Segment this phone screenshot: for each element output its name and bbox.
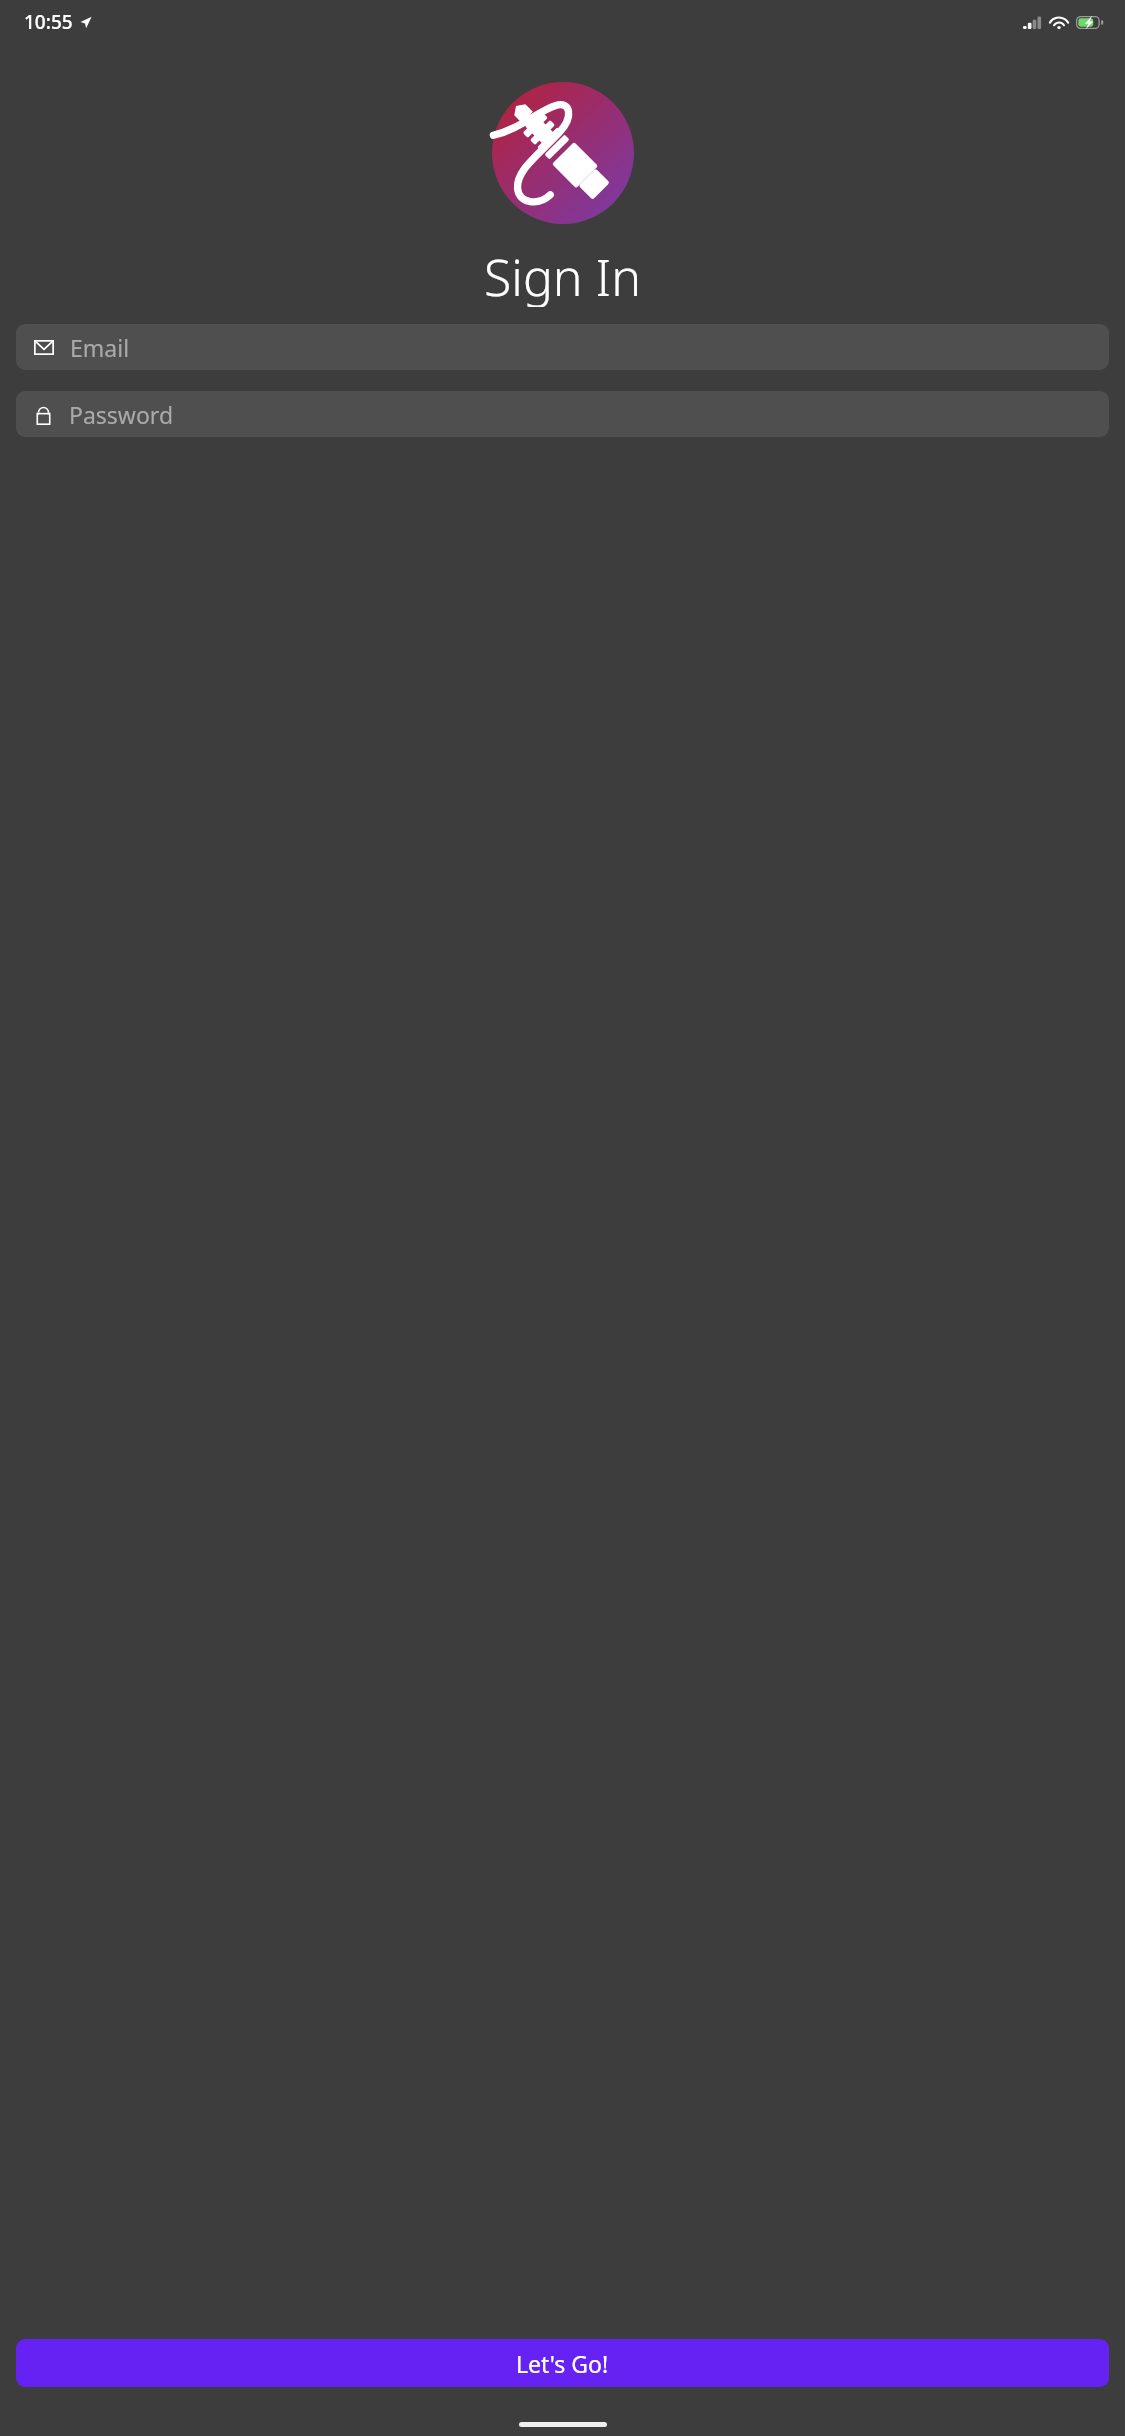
staticText: Sign In [484, 243, 641, 307]
staticText: 10:55 [24, 9, 73, 35]
button[interactable]: Let's Go! [16, 2339, 1109, 2387]
button[interactable]: Password field [16, 391, 1109, 437]
staticText: Email [70, 332, 130, 363]
staticText: Let's Go! [516, 2348, 609, 2379]
staticText: Password [69, 399, 174, 430]
button[interactable]: Email field [16, 324, 1109, 370]
